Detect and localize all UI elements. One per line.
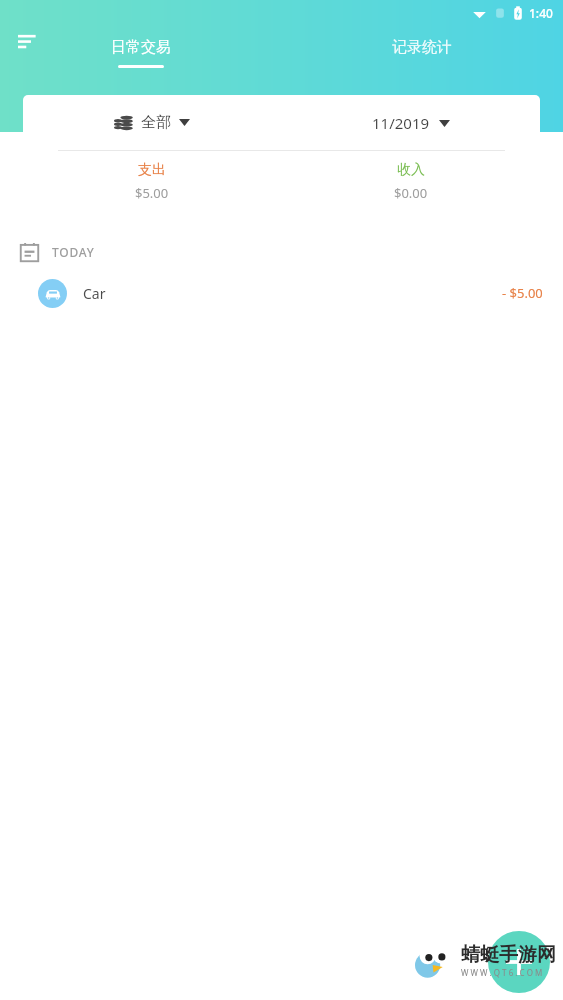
staticText: 1:40 [529,5,553,21]
staticText: 蜻蜓手游网 [461,943,556,967]
staticText: 收入 [397,161,425,179]
staticText: Car [83,284,106,303]
button[interactable]: 记录统计 [281,38,563,82]
button[interactable]: Car [0,272,563,314]
staticText: 支出 [138,161,166,179]
button[interactable]: 日常交易 [0,38,281,82]
staticText: $0.00 [394,184,428,202]
staticText: - $5.00 [502,284,543,302]
staticText: 日常交易 [111,38,171,57]
staticText: 记录统计 [392,38,452,57]
staticText: W W W . Q T 6 . C O M [461,967,543,978]
staticText: TODAY [52,244,95,260]
staticText: $5.00 [135,184,169,202]
button[interactable]: Menu [14,28,40,54]
button[interactable]: 全部 [23,95,540,215]
button[interactable]: Add [488,931,550,993]
staticText: 11/2019 [372,113,430,133]
staticText: 全部 [141,113,171,132]
